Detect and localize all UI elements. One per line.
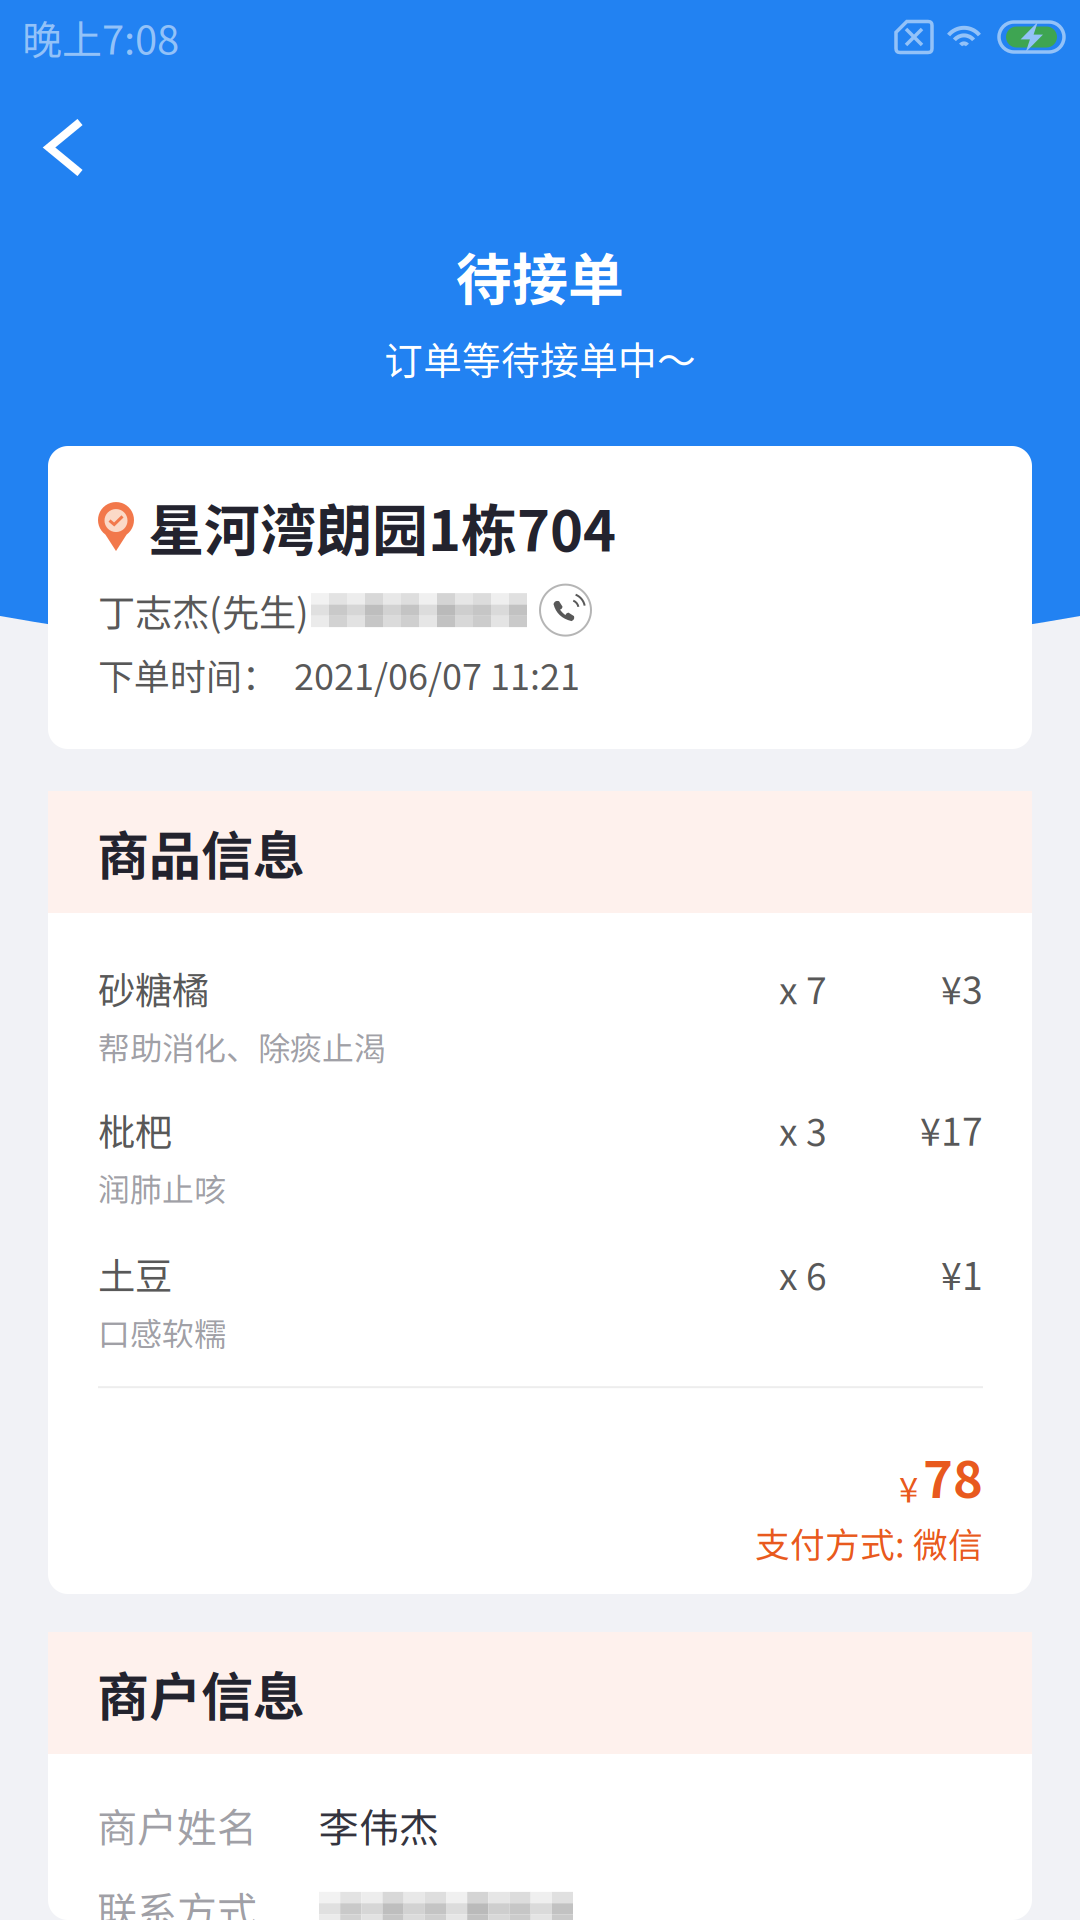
staticText: ¥1 <box>941 1247 983 1301</box>
button[interactable]: Back <box>0 74 114 199</box>
staticText: x 6 <box>779 1247 827 1301</box>
staticText: x 7 <box>779 961 827 1015</box>
staticText: 晚上7:08 <box>22 8 179 66</box>
staticText: 帮助消化、除痰止渴 <box>98 1023 386 1069</box>
staticText: 口感软糯 <box>98 1309 226 1355</box>
staticText: 星河湾朗园1栋704 <box>148 486 616 567</box>
staticText: 联系方式 <box>97 1880 257 1920</box>
staticText: 78 <box>923 1439 983 1513</box>
staticText: 支付方式: 微信 <box>755 1517 983 1568</box>
button[interactable]: Call customer <box>540 585 591 636</box>
staticText: 李伟杰 <box>319 1796 439 1854</box>
staticText: ¥ <box>899 1462 918 1513</box>
staticText: x 3 <box>779 1102 827 1156</box>
staticText: 下单时间： 2021/06/07 11:21 <box>98 648 580 700</box>
staticText: 商品信息 <box>97 814 305 890</box>
staticText: 商户信息 <box>97 1655 305 1731</box>
staticText: 砂糖橘 <box>98 961 209 1015</box>
staticText: 润肺止咳 <box>98 1164 226 1211</box>
staticText: 枇杷 <box>98 1102 172 1156</box>
staticText: 土豆 <box>98 1247 172 1301</box>
staticText: ¥17 <box>920 1102 983 1156</box>
staticText: 订单等待接单中～ <box>384 330 696 386</box>
staticText: 待接单 <box>456 235 624 316</box>
staticText: ¥3 <box>941 961 983 1015</box>
staticText: 丁志杰(先生) <box>98 583 309 637</box>
staticText: 商户姓名 <box>97 1796 257 1854</box>
